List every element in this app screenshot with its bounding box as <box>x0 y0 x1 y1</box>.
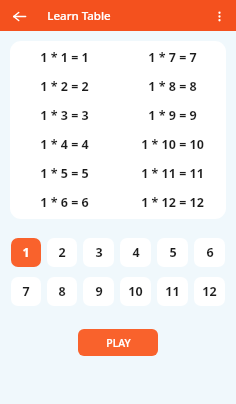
button[interactable]: 5 <box>157 238 188 267</box>
staticText: PLAY <box>106 336 131 350</box>
button[interactable]: 10 <box>120 277 151 306</box>
staticText: 1 * 4 = 4 <box>40 136 89 153</box>
staticText: 1 * 6 = 6 <box>40 194 89 211</box>
staticText: 1 * 1 = 1 <box>40 49 89 66</box>
staticText: 3 <box>95 244 103 261</box>
staticText: 1 * 8 = 8 <box>148 78 197 95</box>
staticText: 4 <box>132 244 140 261</box>
button[interactable]: 6 <box>194 238 225 267</box>
staticText: 9 <box>95 283 103 300</box>
staticText: 1 * 2 = 2 <box>40 78 89 95</box>
staticText: 1 * 9 = 9 <box>148 107 197 124</box>
staticText: 2 <box>58 244 66 261</box>
staticText: Learn Table <box>47 8 111 24</box>
staticText: 1 <box>22 244 30 261</box>
button[interactable]: 1 <box>11 238 41 267</box>
staticText: 1 * 3 = 3 <box>40 107 89 124</box>
button[interactable]: 2 <box>47 238 77 267</box>
staticText: 6 <box>206 244 214 261</box>
staticText: 10 <box>128 283 143 300</box>
staticText: 7 <box>22 283 30 300</box>
button[interactable]: PLAY <box>78 329 158 356</box>
staticText: 1 * 11 = 11 <box>141 165 204 182</box>
button[interactable]: Back <box>6 3 32 29</box>
button[interactable]: 7 <box>11 277 41 306</box>
staticText: 8 <box>58 283 66 300</box>
button[interactable]: 3 <box>83 238 114 267</box>
staticText: 12 <box>202 283 217 300</box>
button[interactable]: 8 <box>47 277 77 306</box>
staticText: 5 <box>169 244 177 261</box>
button[interactable]: 4 <box>120 238 151 267</box>
button[interactable]: 12 <box>194 277 225 306</box>
staticText: 1 * 12 = 12 <box>141 194 204 211</box>
button[interactable]: 9 <box>83 277 114 306</box>
staticText: 1 * 5 = 5 <box>40 165 89 182</box>
staticText: 1 * 10 = 10 <box>141 136 204 153</box>
staticText: 1 * 7 = 7 <box>148 49 197 66</box>
staticText: 11 <box>165 283 180 300</box>
button[interactable]: 11 <box>157 277 188 306</box>
button[interactable]: More options <box>206 3 232 29</box>
